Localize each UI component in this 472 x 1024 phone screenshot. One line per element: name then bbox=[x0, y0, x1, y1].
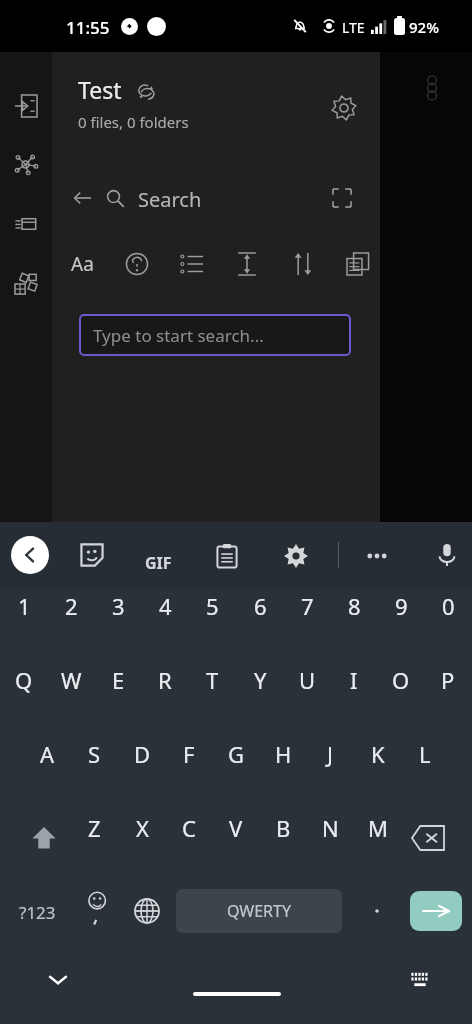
button[interactable]: O bbox=[378, 656, 424, 704]
button[interactable]: Files bbox=[8, 88, 44, 124]
button[interactable]: R bbox=[142, 656, 188, 704]
staticText: U bbox=[299, 665, 316, 695]
button[interactable]: Shift bbox=[16, 810, 72, 866]
staticText: 7 bbox=[301, 591, 314, 621]
button[interactable]: Q bbox=[1, 656, 47, 704]
button[interactable]: Z bbox=[71, 804, 117, 852]
button[interactable]: V bbox=[213, 804, 259, 852]
button[interactable]: ?123 bbox=[6, 888, 68, 936]
staticText: 0 bbox=[442, 591, 455, 621]
button[interactable]: Voice input bbox=[432, 540, 462, 570]
button[interactable]: A bbox=[24, 730, 70, 778]
button[interactable]: Sync bbox=[134, 80, 158, 104]
button[interactable]: Enter bbox=[410, 891, 462, 931]
button[interactable]: L bbox=[402, 730, 448, 778]
staticText: 6 bbox=[254, 591, 267, 621]
staticText: Y bbox=[254, 665, 267, 695]
button[interactable]: Stickers bbox=[78, 541, 106, 569]
staticText: Aa bbox=[71, 251, 94, 277]
button[interactable]: 6 bbox=[237, 582, 283, 630]
button[interactable]: Hide keyboard bbox=[38, 960, 78, 1000]
button[interactable]: K bbox=[355, 730, 401, 778]
button[interactable]: E bbox=[95, 656, 141, 704]
button[interactable]: G bbox=[213, 730, 259, 778]
button[interactable]: Switch keyboard bbox=[400, 960, 440, 1000]
button[interactable]: M bbox=[355, 804, 401, 852]
button[interactable]: 3 bbox=[95, 582, 141, 630]
button[interactable]: Copy bbox=[338, 244, 378, 284]
button[interactable]: Backspace bbox=[400, 810, 456, 866]
staticText: I bbox=[350, 665, 358, 695]
button[interactable]: Expand bbox=[324, 180, 360, 216]
button[interactable]: 1 bbox=[1, 582, 47, 630]
staticText: H bbox=[275, 739, 292, 769]
button[interactable]: 5 bbox=[189, 582, 235, 630]
staticText: Test bbox=[78, 74, 122, 105]
button[interactable]: Recent files bbox=[8, 206, 44, 242]
button[interactable]: W bbox=[48, 656, 94, 704]
button[interactable]: Back bbox=[11, 536, 49, 574]
button[interactable]: Type to start search... bbox=[79, 314, 351, 356]
staticText: 9 bbox=[395, 591, 408, 621]
staticText: 92% bbox=[409, 17, 439, 37]
button[interactable]: B bbox=[260, 804, 306, 852]
button[interactable]: Clipboard bbox=[212, 541, 242, 571]
button[interactable]: Sort bbox=[283, 244, 323, 284]
staticText: 11:55 bbox=[66, 16, 110, 39]
button[interactable]: 9 bbox=[378, 582, 424, 630]
staticText: Type to start search... bbox=[93, 324, 264, 347]
button[interactable]: Change language bbox=[124, 888, 170, 934]
button[interactable]: I bbox=[331, 656, 377, 704]
staticText: Z bbox=[88, 813, 101, 843]
staticText: R bbox=[158, 665, 172, 695]
button[interactable]: P bbox=[425, 656, 471, 704]
button[interactable]: List bbox=[172, 244, 212, 284]
staticText: K bbox=[371, 739, 385, 769]
button[interactable]: N bbox=[307, 804, 353, 852]
staticText: W bbox=[61, 665, 82, 695]
button[interactable]: S bbox=[71, 730, 117, 778]
staticText: T bbox=[206, 665, 219, 695]
button[interactable]: Text style bbox=[62, 244, 102, 284]
staticText: V bbox=[229, 813, 243, 843]
button[interactable]: Keyboard settings bbox=[281, 541, 311, 571]
staticText: B bbox=[276, 813, 291, 843]
button[interactable]: J bbox=[307, 730, 353, 778]
button[interactable]: D bbox=[119, 730, 165, 778]
button[interactable]: F bbox=[166, 730, 212, 778]
button[interactable]: 4 bbox=[142, 582, 188, 630]
button[interactable]: Settings bbox=[324, 88, 364, 128]
button[interactable]: More options bbox=[416, 72, 448, 104]
staticText: L bbox=[419, 739, 431, 769]
staticText: J bbox=[327, 739, 334, 769]
staticText: D bbox=[134, 739, 151, 769]
button[interactable]: 7 bbox=[284, 582, 330, 630]
staticText: 8 bbox=[348, 591, 361, 621]
button[interactable]: 0 bbox=[425, 582, 471, 630]
button[interactable]: QWERTY bbox=[176, 889, 342, 933]
button[interactable]: More bbox=[362, 541, 392, 571]
staticText: Search bbox=[138, 186, 202, 213]
button[interactable]: X bbox=[119, 804, 165, 852]
button[interactable]: U bbox=[284, 656, 330, 704]
staticText: 3 bbox=[112, 591, 125, 621]
button[interactable]: Line height bbox=[227, 244, 267, 284]
button[interactable]: Emoji bbox=[76, 884, 122, 930]
staticText: 1 bbox=[18, 591, 31, 621]
button[interactable]: Y bbox=[237, 656, 283, 704]
staticText: N bbox=[322, 813, 339, 843]
button[interactable]: Help bbox=[117, 244, 157, 284]
button[interactable]: T bbox=[189, 656, 235, 704]
button[interactable]: C bbox=[166, 804, 212, 852]
button[interactable]: H bbox=[260, 730, 306, 778]
button[interactable]: Back bbox=[64, 180, 100, 216]
staticText: X bbox=[136, 813, 149, 843]
staticText: O bbox=[392, 665, 410, 695]
button[interactable]: 2 bbox=[48, 582, 94, 630]
button[interactable]: Search bbox=[97, 180, 133, 216]
button[interactable]: Period bbox=[355, 889, 399, 933]
button[interactable]: Graph view bbox=[8, 146, 44, 182]
button[interactable]: 8 bbox=[331, 582, 377, 630]
button[interactable]: Canvas bbox=[8, 266, 44, 302]
button[interactable]: GIF bbox=[136, 541, 180, 585]
